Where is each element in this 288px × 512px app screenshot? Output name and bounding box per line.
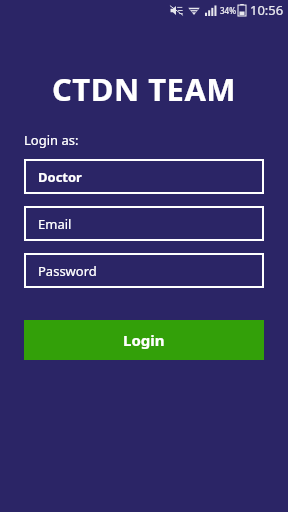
button[interactable]: Email xyxy=(24,206,264,241)
button[interactable]: Doctor xyxy=(24,159,264,194)
button[interactable]: Password xyxy=(24,253,264,288)
staticText: Doctor xyxy=(38,168,82,186)
staticText: Password xyxy=(38,262,97,280)
other: Battery 34 percent xyxy=(238,4,246,16)
staticText: 34% xyxy=(220,5,236,16)
other: Silent mode xyxy=(170,5,183,16)
staticText: Login xyxy=(123,330,165,350)
staticText: CTDN TEAM xyxy=(0,68,288,110)
button[interactable]: Login xyxy=(24,320,264,360)
other: Wi-Fi xyxy=(188,5,200,16)
staticText: Email xyxy=(38,215,72,233)
other: Mobile signal xyxy=(205,5,218,16)
staticText: Login as: xyxy=(24,131,79,149)
staticText: 10:56 xyxy=(250,1,284,19)
